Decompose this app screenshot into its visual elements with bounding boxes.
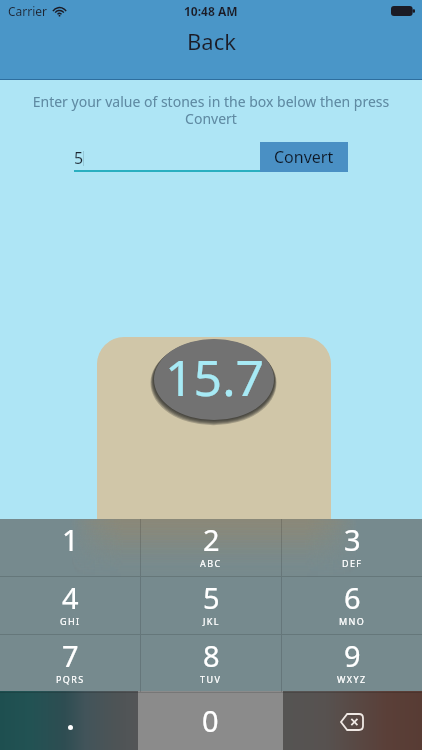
staticText: 0 — [202, 701, 219, 740]
staticText: DEF — [342, 557, 363, 569]
staticText: Carrier — [8, 3, 48, 19]
button[interactable]: 5 — [74, 146, 260, 170]
button[interactable]: 5 — [141, 577, 281, 634]
staticText: 7 — [62, 636, 79, 675]
button[interactable]: 6 — [282, 577, 422, 634]
button[interactable]: 9 — [282, 635, 422, 692]
staticText: MNO — [339, 615, 366, 627]
staticText: PQRS — [56, 673, 85, 685]
staticText: JKL — [203, 615, 220, 627]
staticText: Enter your value of stones in the box be… — [26, 92, 396, 128]
staticText: 3 — [344, 520, 361, 559]
button[interactable]: Back — [187, 26, 236, 56]
staticText: 1 — [62, 520, 79, 559]
button[interactable]: 7 — [0, 635, 140, 692]
staticText: WXYZ — [337, 673, 367, 685]
button[interactable]: Convert — [260, 142, 348, 172]
staticText: 6 — [344, 578, 361, 617]
button[interactable]: 4 — [0, 577, 140, 634]
staticText: 5 — [74, 147, 84, 169]
staticText: 5 — [203, 578, 220, 617]
button[interactable]: 2 — [141, 519, 281, 576]
staticText: 15.7 — [165, 343, 265, 411]
staticText: 9 — [344, 636, 361, 675]
staticText: 8 — [203, 636, 220, 675]
staticText: ABC — [200, 557, 222, 569]
button[interactable]: 8 — [141, 635, 281, 692]
staticText: TUV — [200, 673, 222, 685]
button[interactable]: Delete — [281, 693, 422, 750]
staticText: Convert — [274, 146, 334, 168]
button[interactable]: 1 — [0, 519, 140, 576]
staticText: GHI — [60, 615, 81, 627]
button[interactable]: Decimal point — [0, 693, 140, 750]
staticText: 2 — [203, 520, 220, 559]
staticText: 4 — [62, 578, 79, 617]
staticText: 10:48 AM — [184, 3, 238, 19]
button[interactable]: 3 — [282, 519, 422, 576]
button[interactable]: 0 — [140, 693, 281, 750]
